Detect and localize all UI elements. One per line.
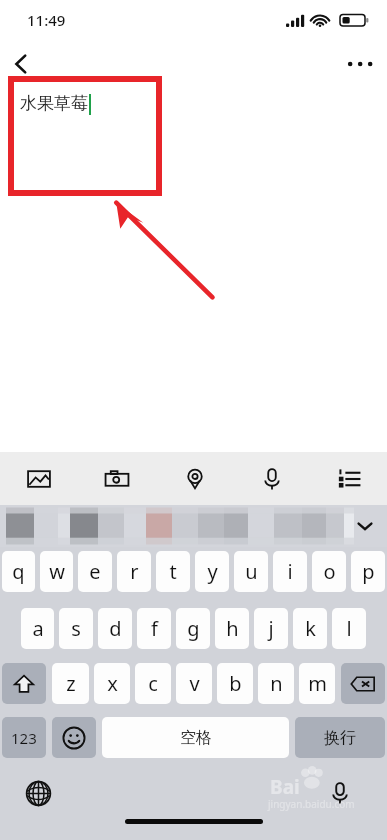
staticText: d bbox=[109, 615, 122, 642]
button[interactable]: Emoji bbox=[52, 717, 96, 758]
button[interactable]: Camera bbox=[78, 452, 156, 505]
button[interactable]: x bbox=[94, 663, 130, 704]
button[interactable]: Switch language bbox=[20, 775, 56, 811]
button[interactable]: Shift bbox=[2, 663, 46, 704]
staticText: m bbox=[308, 670, 327, 697]
button[interactable]: Back bbox=[2, 44, 42, 84]
button[interactable]: f bbox=[137, 608, 171, 649]
button[interactable]: d bbox=[98, 608, 132, 649]
staticText: k bbox=[305, 615, 316, 642]
staticText: e bbox=[89, 558, 101, 585]
button[interactable]: g bbox=[176, 608, 210, 649]
staticText: t bbox=[169, 558, 177, 585]
button[interactable]: z bbox=[52, 663, 89, 704]
staticText: 11:49 bbox=[27, 10, 66, 30]
staticText: y bbox=[207, 558, 218, 585]
staticText: w bbox=[49, 558, 65, 585]
button[interactable]: y bbox=[195, 551, 229, 592]
button[interactable]: j bbox=[254, 608, 288, 649]
button[interactable]: w bbox=[40, 551, 73, 592]
staticText: n bbox=[270, 670, 283, 697]
button[interactable]: More options bbox=[340, 44, 382, 84]
button[interactable]: s bbox=[59, 608, 93, 649]
button[interactable]: l bbox=[332, 608, 366, 649]
staticText: q bbox=[12, 558, 25, 585]
staticText: j bbox=[268, 615, 274, 642]
staticText: Bai bbox=[270, 774, 300, 800]
staticText: i bbox=[287, 558, 293, 585]
staticText: 水果草莓 bbox=[20, 93, 88, 114]
button[interactable]: r bbox=[117, 551, 151, 592]
staticText: f bbox=[151, 615, 158, 642]
staticText: g bbox=[187, 615, 200, 642]
button[interactable]: b bbox=[217, 663, 253, 704]
button[interactable]: List bbox=[310, 452, 387, 505]
staticText: l bbox=[346, 615, 352, 642]
button[interactable]: n bbox=[258, 663, 294, 704]
button[interactable]: t bbox=[156, 551, 190, 592]
staticText: x bbox=[107, 670, 118, 697]
staticText: z bbox=[66, 670, 76, 697]
staticText: p bbox=[362, 558, 375, 585]
button[interactable]: Delete bbox=[341, 663, 385, 704]
button[interactable]: k bbox=[293, 608, 327, 649]
button[interactable]: Collapse keyboard bbox=[343, 505, 387, 547]
staticText: 换行 bbox=[324, 728, 356, 748]
staticText: 空格 bbox=[180, 728, 212, 748]
staticText: u bbox=[245, 558, 258, 585]
button[interactable]: h bbox=[215, 608, 249, 649]
button[interactable]: c bbox=[135, 663, 171, 704]
button[interactable]: v bbox=[176, 663, 212, 704]
button[interactable]: q bbox=[2, 551, 35, 592]
button[interactable]: 换行 bbox=[295, 717, 385, 758]
staticText: h bbox=[226, 615, 239, 642]
button[interactable]: Voice input bbox=[322, 775, 358, 811]
button[interactable]: e bbox=[78, 551, 112, 592]
staticText: b bbox=[229, 670, 242, 697]
staticText: c bbox=[148, 670, 158, 697]
button[interactable]: a bbox=[21, 608, 54, 649]
staticText: o bbox=[323, 558, 336, 585]
staticText: r bbox=[130, 558, 139, 585]
button[interactable]: u bbox=[234, 551, 268, 592]
button[interactable]: o bbox=[312, 551, 346, 592]
button[interactable]: i bbox=[273, 551, 307, 592]
button[interactable]: m bbox=[299, 663, 335, 704]
button[interactable]: 123 bbox=[2, 717, 46, 758]
staticText: v bbox=[189, 670, 200, 697]
button[interactable]: Photos bbox=[0, 452, 78, 505]
staticText: s bbox=[71, 615, 81, 642]
button[interactable]: Voice input bbox=[233, 452, 310, 505]
staticText: 123 bbox=[11, 728, 37, 748]
staticText: jingyan.baidu.com bbox=[268, 797, 355, 811]
staticText: a bbox=[32, 615, 44, 642]
button[interactable]: Location bbox=[156, 452, 233, 505]
button[interactable]: 空格 bbox=[102, 717, 289, 758]
button[interactable]: p bbox=[351, 551, 385, 592]
